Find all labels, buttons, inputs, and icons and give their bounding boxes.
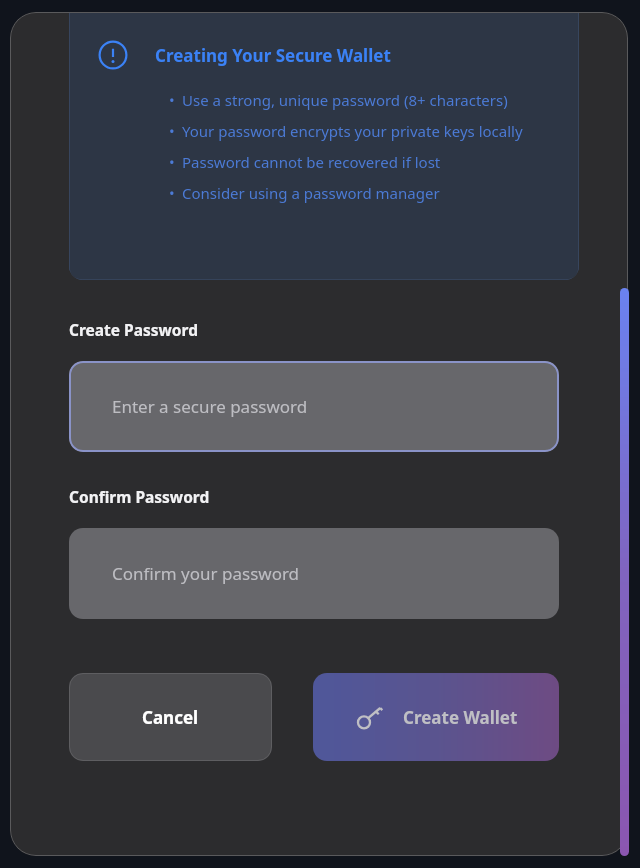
staticText: Password cannot be recovered if lost — [182, 152, 441, 172]
staticText: • — [169, 183, 175, 203]
staticText: Use a strong, unique password (8+ charac… — [182, 90, 508, 110]
button[interactable]: Enter a secure password — [69, 361, 559, 452]
other: Key — [355, 702, 385, 732]
staticText: • — [169, 121, 175, 141]
staticText: Your password encrypts your private keys… — [182, 121, 523, 141]
button[interactable]: Confirm your password — [69, 528, 559, 619]
staticText: Consider using a password manager — [182, 183, 440, 203]
staticText: Creating Your Secure Wallet — [155, 44, 391, 67]
button[interactable]: Key — [313, 673, 559, 761]
staticText: Enter a secure password — [112, 395, 308, 418]
button[interactable]: Cancel — [69, 673, 272, 761]
staticText: Confirm Password — [69, 486, 210, 507]
staticText: Cancel — [142, 706, 199, 729]
staticText: • — [169, 90, 175, 110]
staticText: Create Password — [69, 319, 198, 340]
staticText: Create Wallet — [403, 706, 518, 729]
staticText: • — [169, 152, 175, 172]
staticText: Confirm your password — [112, 562, 300, 585]
